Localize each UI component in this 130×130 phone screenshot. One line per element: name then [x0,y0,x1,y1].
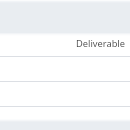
button[interactable]: Deliverable [0,32,130,57]
staticText: Deliverable [75,37,125,50]
button[interactable] [0,82,130,107]
button[interactable] [0,57,130,82]
button[interactable] [0,107,130,130]
button[interactable]: App bar [0,0,130,36]
button[interactable]: Bottom navigation bar [0,119,130,130]
